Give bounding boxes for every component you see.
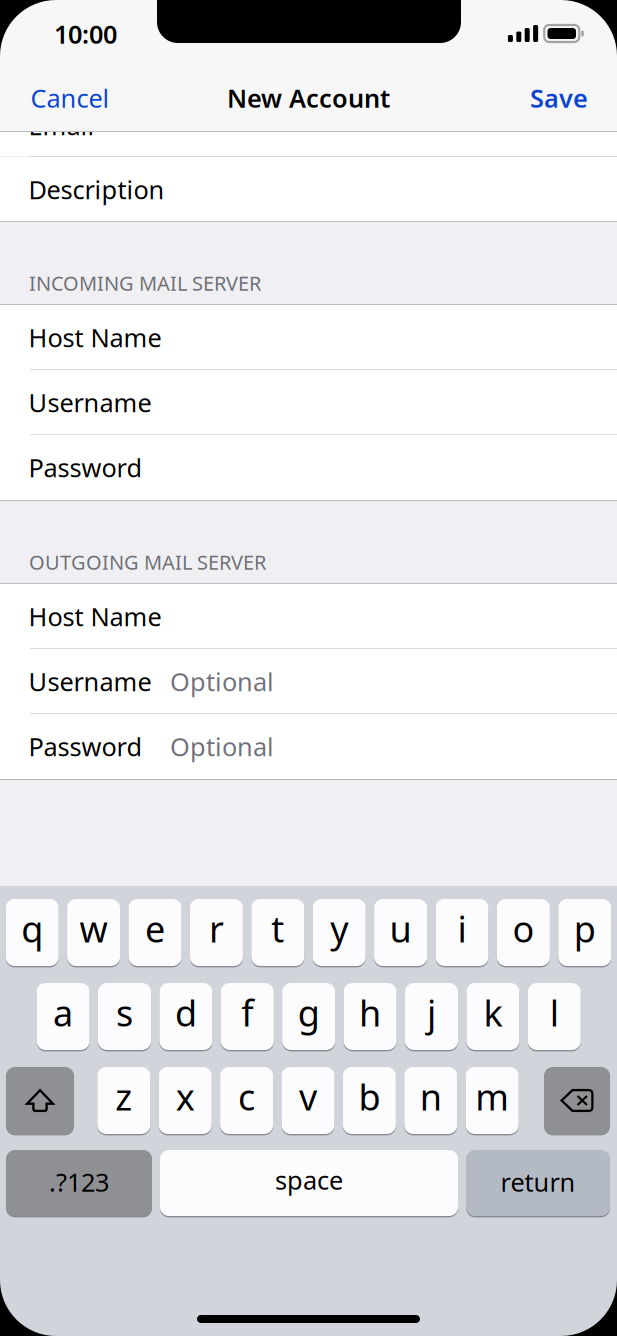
staticText: j (427, 989, 436, 1036)
button[interactable]: a (37, 981, 90, 1051)
staticText: Description (28, 173, 164, 206)
staticText: space (275, 1163, 343, 1197)
button[interactable]: f (221, 981, 274, 1051)
staticText: Host Name (28, 600, 161, 633)
button[interactable]: g (282, 981, 335, 1051)
button[interactable]: Username (0, 649, 617, 714)
button[interactable]: x (159, 1065, 212, 1135)
staticText: t (271, 905, 284, 952)
button[interactable]: Delete (544, 1065, 610, 1135)
button[interactable]: k (466, 981, 519, 1051)
button[interactable]: v (281, 1065, 334, 1135)
staticText: a (53, 989, 73, 1036)
staticText: n (420, 1073, 442, 1120)
staticText: k (483, 989, 502, 1036)
button[interactable]: n (404, 1065, 457, 1135)
button[interactable]: u (374, 897, 427, 967)
button[interactable]: Save (490, 74, 605, 122)
staticText: d (175, 989, 197, 1036)
staticText: i (457, 905, 466, 952)
button[interactable]: l (528, 981, 581, 1051)
button[interactable]: j (405, 981, 458, 1051)
staticText: Cancel (30, 81, 109, 115)
button[interactable]: Description (0, 157, 617, 222)
staticText: p (574, 905, 596, 952)
staticText: Password (28, 730, 142, 763)
staticText: h (359, 989, 381, 1036)
staticText: r (209, 905, 224, 952)
staticText: o (512, 905, 534, 952)
staticText: l (550, 989, 559, 1036)
staticText: OUTGOING MAIL SERVER (29, 549, 266, 575)
staticText: y (330, 905, 348, 952)
staticText: c (238, 1073, 255, 1120)
button[interactable]: y (313, 897, 366, 967)
button[interactable]: Password (0, 714, 617, 779)
button[interactable]: z (97, 1065, 150, 1135)
button[interactable]: h (344, 981, 397, 1051)
staticText: New Account (227, 81, 390, 115)
button[interactable]: Host Name (0, 584, 617, 649)
staticText: Username (28, 386, 151, 419)
button[interactable]: m (466, 1065, 519, 1135)
button[interactable]: p (558, 897, 611, 967)
button[interactable]: c (220, 1065, 273, 1135)
button[interactable]: .?123 (6, 1148, 152, 1217)
button[interactable]: o (497, 897, 550, 967)
button[interactable]: Shift (6, 1065, 74, 1135)
staticText: u (390, 905, 412, 952)
button[interactable]: Password (0, 435, 617, 500)
staticText: f (241, 989, 253, 1036)
staticText: return (500, 1165, 575, 1199)
button[interactable]: Username (0, 370, 617, 435)
button[interactable]: s (98, 981, 151, 1051)
button[interactable]: b (343, 1065, 396, 1135)
staticText: x (176, 1073, 195, 1120)
staticText: Password (28, 451, 142, 484)
staticText: Save (530, 81, 588, 115)
button[interactable]: w (67, 897, 120, 967)
staticText: g (298, 989, 320, 1036)
staticText: s (116, 989, 133, 1036)
staticText: w (80, 905, 108, 952)
button[interactable]: Cancel (20, 74, 150, 122)
button[interactable]: d (159, 981, 212, 1051)
button[interactable]: e (128, 897, 181, 967)
staticText: 10:00 (54, 17, 117, 51)
button[interactable]: q (6, 897, 59, 967)
button[interactable]: space (160, 1148, 458, 1217)
staticText: m (475, 1073, 509, 1120)
staticText: q (21, 905, 43, 952)
button[interactable]: return (466, 1148, 610, 1217)
button[interactable]: r (190, 897, 243, 967)
button[interactable]: i (435, 897, 488, 967)
staticText: Optional (170, 730, 274, 763)
staticText: z (115, 1073, 132, 1120)
staticText: .?123 (49, 1165, 109, 1199)
staticText: Optional (170, 665, 274, 698)
button[interactable]: Host Name (0, 305, 617, 370)
button[interactable]: t (251, 897, 304, 967)
staticText: Email (28, 109, 94, 142)
staticText: e (145, 905, 165, 952)
staticText: v (299, 1073, 317, 1120)
staticText: b (358, 1073, 380, 1120)
staticText: Username (28, 665, 151, 698)
staticText: Host Name (28, 321, 161, 354)
staticText: INCOMING MAIL SERVER (29, 270, 261, 296)
